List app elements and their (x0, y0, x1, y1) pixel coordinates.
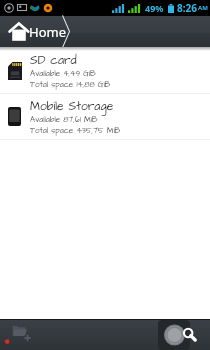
staticText: 49% (145, 2, 164, 14)
staticText: Mobile Storage (30, 98, 114, 115)
button[interactable]: Home (0, 16, 210, 47)
button[interactable]: Search (158, 320, 190, 350)
button[interactable]: New folder (0, 320, 34, 350)
staticText: Total space 435,75 MiB (30, 125, 121, 136)
staticText: 8:26 (177, 1, 197, 15)
staticText: Available 4,49 GiB (30, 68, 96, 79)
staticText: Home (29, 23, 66, 41)
staticText: AM (198, 4, 208, 12)
staticText: Available 87,61 MiB (30, 114, 98, 125)
staticText: Total space 14,88 GiB (30, 79, 111, 90)
button[interactable]: SD card (0, 48, 210, 93)
staticText: SD card (30, 52, 77, 69)
button[interactable]: Mobile Storage (0, 94, 210, 139)
